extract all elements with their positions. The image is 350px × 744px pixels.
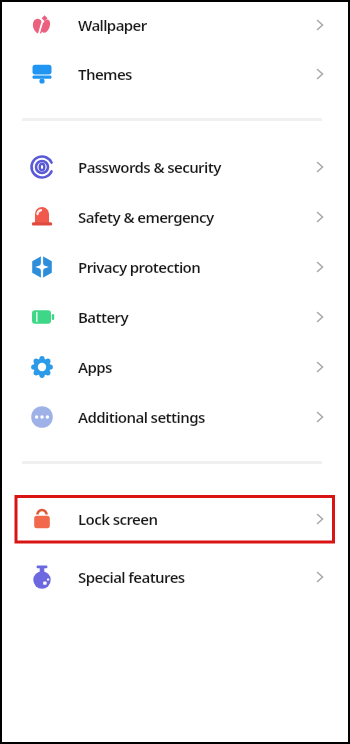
- button[interactable]: Safety & emergency: [0, 192, 350, 242]
- staticText: Special features: [78, 567, 185, 587]
- staticText: Safety & emergency: [78, 207, 214, 227]
- staticText: Passwords & security: [78, 157, 221, 177]
- staticText: Privacy protection: [78, 257, 201, 277]
- button[interactable]: Themes: [0, 49, 350, 99]
- button[interactable]: Passwords & security: [0, 142, 350, 192]
- button[interactable]: Special features: [0, 552, 350, 602]
- button[interactable]: Battery: [0, 292, 350, 342]
- staticText: Battery: [78, 307, 129, 327]
- button[interactable]: Wallpaper: [0, 0, 350, 49]
- button[interactable]: Lock screen: [0, 494, 350, 544]
- staticText: Wallpaper: [78, 15, 147, 35]
- button[interactable]: Privacy protection: [0, 242, 350, 292]
- button[interactable]: Additional settings: [0, 392, 350, 442]
- staticText: Lock screen: [78, 509, 158, 529]
- button[interactable]: Apps: [0, 342, 350, 392]
- staticText: Themes: [78, 64, 132, 84]
- staticText: Additional settings: [78, 407, 205, 427]
- staticText: Apps: [78, 357, 112, 377]
